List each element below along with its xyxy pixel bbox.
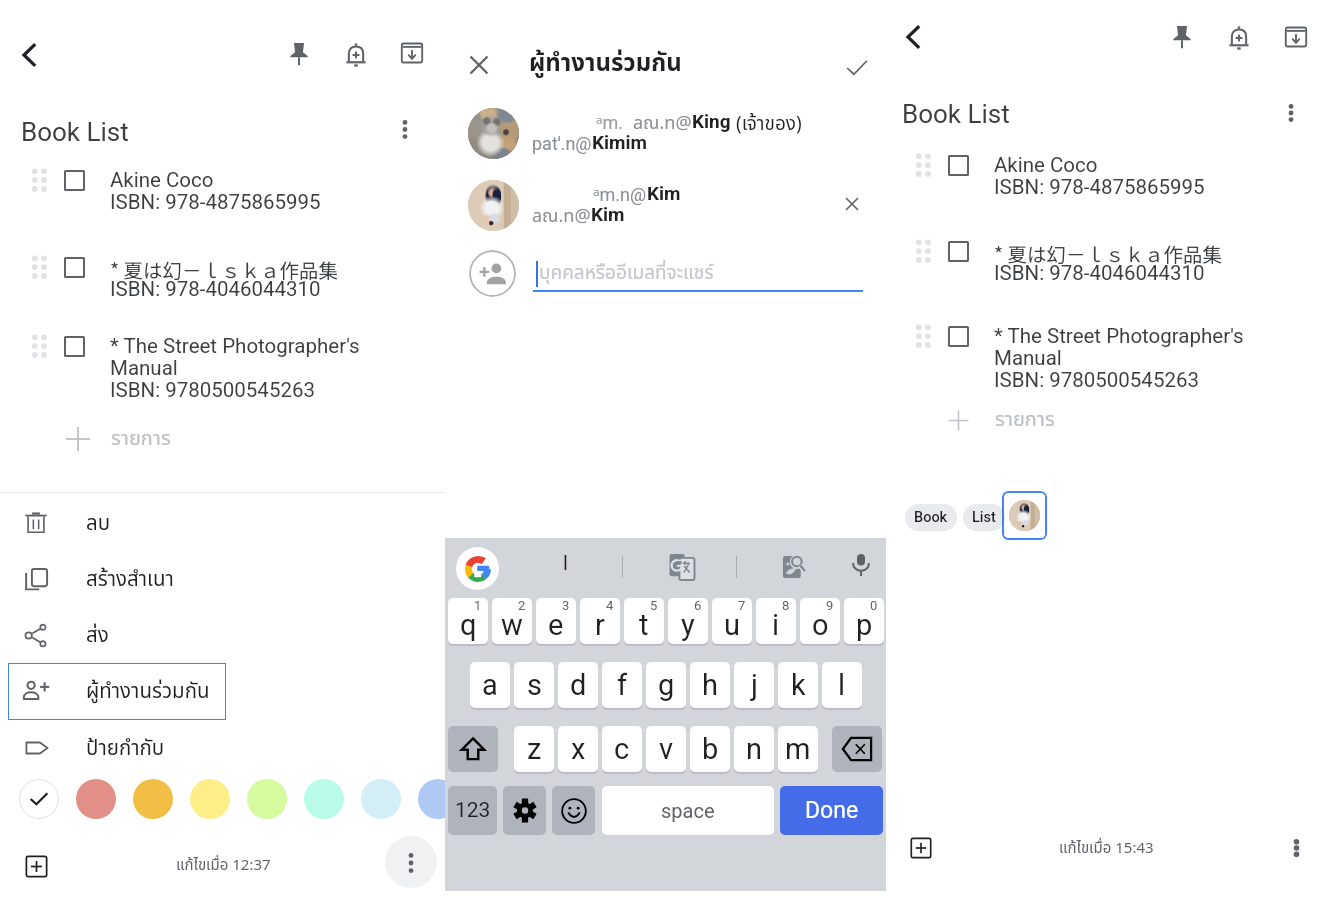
button[interactable]: 1 — [448, 598, 488, 644]
button[interactable]: Voice input — [843, 544, 879, 586]
button[interactable]: Pin — [273, 27, 325, 79]
button[interactable]: x — [558, 726, 598, 772]
button[interactable]: space — [602, 786, 774, 835]
button[interactable]: l — [822, 662, 862, 708]
button[interactable]: Emoji — [552, 786, 595, 835]
button[interactable]: Settings — [503, 786, 546, 835]
button[interactable]: รายการ — [946, 404, 1055, 436]
button[interactable]: ส่ง — [0, 607, 445, 663]
button[interactable]: aณ.n@ — [532, 203, 625, 230]
button[interactable]: Default colour — [19, 779, 59, 819]
button[interactable]: ผู้ทำงานร่วมกัน — [8, 663, 226, 720]
button[interactable]: 123 — [448, 786, 497, 835]
button[interactable]: Archive — [1271, 12, 1321, 66]
button[interactable]: d — [558, 662, 598, 708]
button[interactable]: 5 — [624, 598, 664, 644]
button[interactable]: Colour — [247, 779, 287, 819]
button[interactable]: Archive — [387, 28, 437, 82]
button[interactable]: Pin — [1156, 10, 1208, 62]
button[interactable]: v — [646, 726, 686, 772]
button[interactable]: สร้างสำเนา — [0, 551, 445, 607]
button[interactable]: Colour — [190, 779, 230, 819]
button[interactable]: 7 — [712, 598, 752, 644]
button[interactable]: More options — [1280, 96, 1302, 130]
button[interactable]: Checkbox — [948, 326, 969, 347]
button[interactable]: Back — [887, 11, 939, 67]
button[interactable]: Search images — [774, 546, 814, 587]
button[interactable]: Add — [17, 847, 56, 886]
button[interactable]: แก้ไขเมื่อ 15:43 — [1059, 837, 1154, 860]
button[interactable]: ᵃm.n@ — [593, 182, 681, 207]
button[interactable]: แก้ไขเมื่อ 12:37 — [176, 854, 271, 877]
button[interactable]: Colour — [304, 779, 344, 819]
button[interactable]: 9 — [800, 598, 840, 644]
button[interactable]: Colour — [418, 779, 458, 819]
button[interactable]: More — [1285, 831, 1308, 865]
button[interactable]: Collaborator avatar — [1009, 500, 1040, 531]
button[interactable]: Collaborator avatar — [468, 108, 519, 159]
button[interactable]: Back — [3, 29, 55, 85]
button[interactable]: b — [690, 726, 730, 772]
button[interactable]: Save — [836, 47, 878, 89]
button[interactable]: ผู้ทำงานร่วมกัน — [529, 46, 682, 82]
button[interactable]: Akine Coco ISBN: 978-4875865995 — [110, 168, 420, 214]
button[interactable]: Backspace — [832, 726, 882, 772]
button[interactable]: Book List — [21, 117, 129, 147]
button[interactable]: Close — [454, 40, 504, 90]
button[interactable]: Add person — [469, 250, 516, 297]
button[interactable]: * The Street Photographer's Manual ISBN:… — [994, 324, 1304, 392]
button[interactable]: * The Street Photographer's Manual ISBN:… — [110, 334, 420, 402]
button[interactable]: h — [690, 662, 730, 708]
button[interactable]: ᵃm. — [596, 110, 802, 139]
button[interactable]: ลบ — [0, 495, 445, 551]
button[interactable]: Translate — [661, 545, 703, 588]
staticText: Kim — [591, 203, 625, 225]
button[interactable]: Collaborator avatar — [1002, 491, 1047, 540]
button[interactable]: Colour — [133, 779, 173, 819]
button[interactable]: Done — [780, 786, 883, 835]
button[interactable]: ป้ายกำกับ — [0, 720, 445, 776]
button[interactable]: Book List — [902, 99, 1010, 129]
button[interactable]: Shift — [448, 726, 498, 772]
button[interactable]: บุคคลหรืออีเมลที่จะแชร์ — [536, 259, 866, 293]
button[interactable]: m — [778, 726, 818, 772]
button[interactable]: a — [470, 662, 510, 708]
button[interactable]: k — [778, 662, 818, 708]
button[interactable]: 4 — [580, 598, 620, 644]
button[interactable]: Checkbox — [64, 336, 85, 357]
button[interactable]: Akine Coco ISBN: 978-4875865995 — [994, 153, 1304, 199]
button[interactable]: Book — [905, 504, 957, 531]
button[interactable]: * 夏は幻－ｌｓｋａ作品集 — [994, 239, 1304, 267]
button[interactable]: * 夏は幻－ｌｓｋａ作品集 — [110, 255, 420, 283]
button[interactable]: z — [514, 726, 554, 772]
button[interactable]: รายการ — [63, 423, 171, 455]
button[interactable]: 2 — [492, 598, 532, 644]
button[interactable]: j — [734, 662, 774, 708]
button[interactable]: 8 — [756, 598, 796, 644]
button[interactable]: Collaborator avatar — [468, 180, 519, 231]
button[interactable]: Add — [902, 829, 940, 867]
button[interactable]: n — [734, 726, 774, 772]
button[interactable]: f — [602, 662, 642, 708]
button[interactable]: s — [514, 662, 554, 708]
button[interactable]: g — [646, 662, 686, 708]
button[interactable]: Checkbox — [948, 155, 969, 176]
button[interactable]: Checkbox — [64, 170, 85, 191]
staticText: l — [838, 668, 846, 702]
button[interactable]: Colour — [76, 779, 116, 819]
button[interactable]: Colour — [361, 779, 401, 819]
button[interactable]: Remove collaborator — [832, 184, 872, 224]
button[interactable]: c — [602, 726, 642, 772]
button[interactable]: Reminder — [331, 31, 381, 81]
button[interactable]: 0 — [844, 598, 884, 644]
button[interactable]: More options — [394, 112, 416, 147]
button[interactable]: Reminder — [1214, 14, 1264, 64]
button[interactable]: 6 — [668, 598, 708, 644]
button[interactable]: More — [385, 836, 437, 888]
button[interactable]: Checkbox — [948, 241, 969, 262]
button[interactable]: List — [963, 504, 1005, 531]
button[interactable]: Checkbox — [64, 257, 85, 278]
button[interactable]: 3 — [536, 598, 576, 644]
button[interactable]: Google — [456, 547, 499, 590]
button[interactable]: patˈ.n@ — [532, 131, 648, 156]
